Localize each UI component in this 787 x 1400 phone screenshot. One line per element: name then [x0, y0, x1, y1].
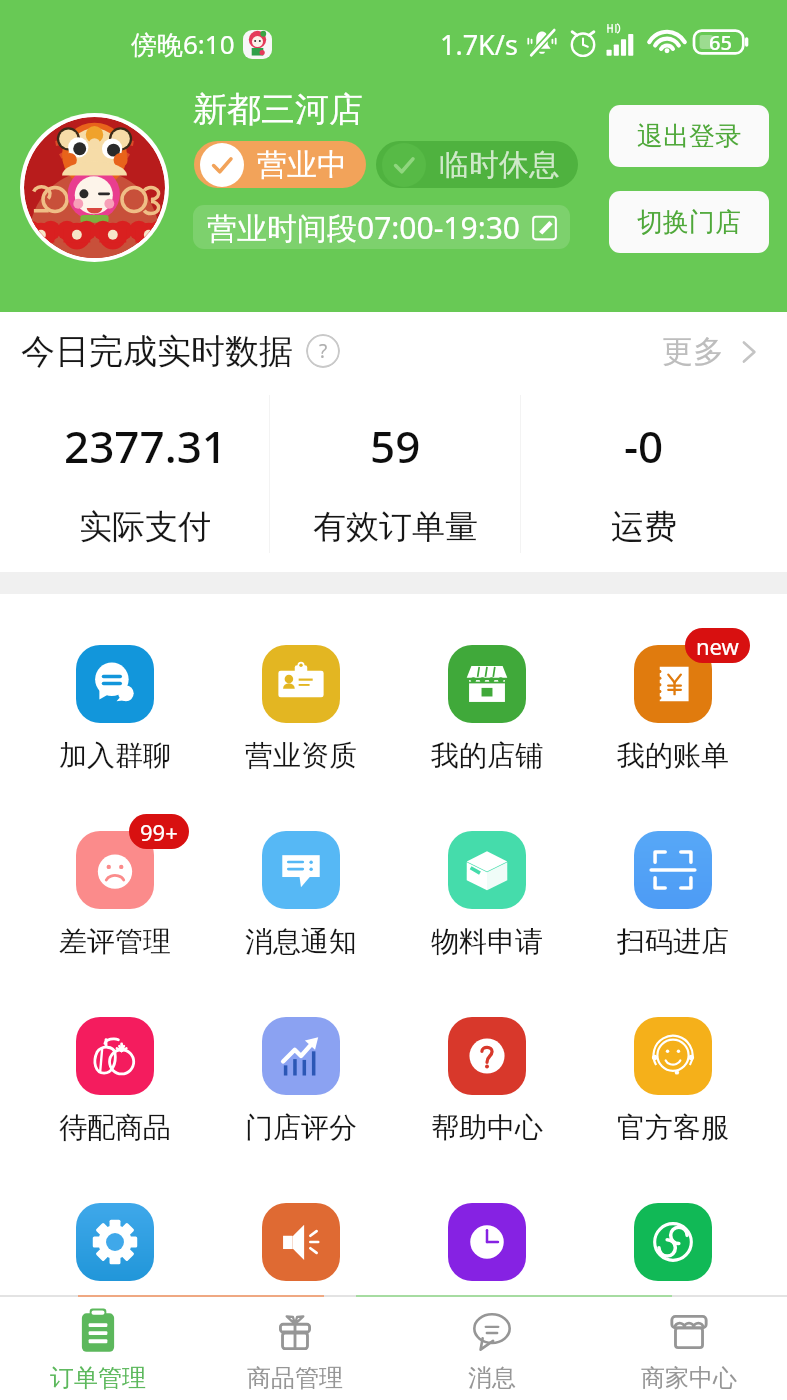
staticText: 营业时间段07:00-19:30 — [207, 207, 521, 248]
button[interactable]: 营业资质 — [208, 645, 394, 831]
button[interactable]: 更多 — [662, 332, 766, 371]
button[interactable]: 营业时间 — [394, 1203, 580, 1296]
staticText: 退出登录 — [637, 120, 741, 153]
staticText: 我的账单 — [617, 738, 729, 773]
button[interactable]: 临时休息 — [376, 141, 578, 188]
staticText: 加入群聊 — [59, 738, 171, 773]
staticText: 订单管理 — [50, 1363, 146, 1393]
staticText: 傍晚6:10 — [131, 26, 235, 62]
button[interactable]: 小程序 — [580, 1203, 766, 1296]
staticText: -0 — [624, 416, 664, 476]
button[interactable]: 广播 — [208, 1203, 394, 1296]
staticText: 临时休息 — [439, 146, 559, 184]
staticText: 新都三河店 — [193, 88, 363, 131]
button[interactable]: Help — [306, 334, 340, 368]
staticText: 营业资质 — [245, 738, 357, 773]
button[interactable]: Store avatar — [24, 117, 165, 258]
button[interactable]: 订单管理 — [0, 1297, 196, 1400]
staticText: 物料申请 — [431, 924, 543, 959]
staticText: 实际支付 — [79, 506, 211, 548]
staticText: 1.7K/s — [440, 26, 518, 63]
staticText: 门店评分 — [245, 1110, 357, 1145]
button[interactable]: 退出登录 — [609, 105, 769, 167]
staticText: 扫码进店 — [617, 924, 729, 959]
staticText: 切换门店 — [637, 206, 741, 239]
staticText: 消息通知 — [245, 924, 357, 959]
button[interactable]: 商品管理 — [196, 1297, 393, 1400]
button[interactable]: 切换门店 — [609, 191, 769, 253]
staticText: 运费 — [611, 506, 677, 548]
staticText: 帮助中心 — [431, 1110, 543, 1145]
staticText: 99+ — [140, 817, 178, 847]
staticText: new — [696, 631, 739, 661]
button[interactable]: 设置 — [21, 1203, 208, 1296]
button[interactable]: 我的账单 — [580, 645, 766, 831]
button[interactable]: 59 — [270, 390, 520, 572]
staticText: 商品管理 — [247, 1363, 343, 1393]
staticText: 65 — [709, 29, 732, 56]
staticText: 59 — [370, 416, 421, 476]
button[interactable]: 2377.31 — [21, 390, 269, 572]
button[interactable]: 我的店铺 — [394, 645, 580, 831]
button[interactable]: 消息通知 — [208, 831, 394, 1017]
button[interactable]: 商家中心 — [590, 1297, 787, 1400]
button[interactable]: 门店评分 — [208, 1017, 394, 1203]
staticText: 消息 — [468, 1363, 516, 1393]
staticText: 差评管理 — [59, 924, 171, 959]
staticText: 商家中心 — [641, 1363, 737, 1393]
button[interactable]: 营业时间段07:00-19:30 — [193, 205, 570, 249]
staticText: 今日完成实时数据 — [21, 330, 293, 373]
staticText: 待配商品 — [59, 1110, 171, 1145]
staticText: 更多 — [662, 332, 724, 371]
button[interactable]: 官方客服 — [580, 1017, 766, 1203]
button[interactable]: 待配商品 — [21, 1017, 208, 1203]
button[interactable]: 物料申请 — [394, 831, 580, 1017]
button[interactable]: 营业中 — [194, 141, 366, 188]
staticText: 官方客服 — [617, 1110, 729, 1145]
button[interactable]: 差评管理 — [21, 831, 208, 1017]
staticText: 我的店铺 — [431, 738, 543, 773]
button[interactable]: 帮助中心 — [394, 1017, 580, 1203]
button[interactable]: 扫码进店 — [580, 831, 766, 1017]
button[interactable]: 消息 — [393, 1297, 590, 1400]
staticText: ? — [319, 338, 328, 364]
button[interactable]: 加入群聊 — [21, 645, 208, 831]
staticText: 2377.31 — [64, 416, 227, 476]
staticText: 有效订单量 — [313, 506, 478, 548]
staticText: 营业中 — [257, 146, 347, 184]
button[interactable]: -0 — [521, 390, 766, 572]
